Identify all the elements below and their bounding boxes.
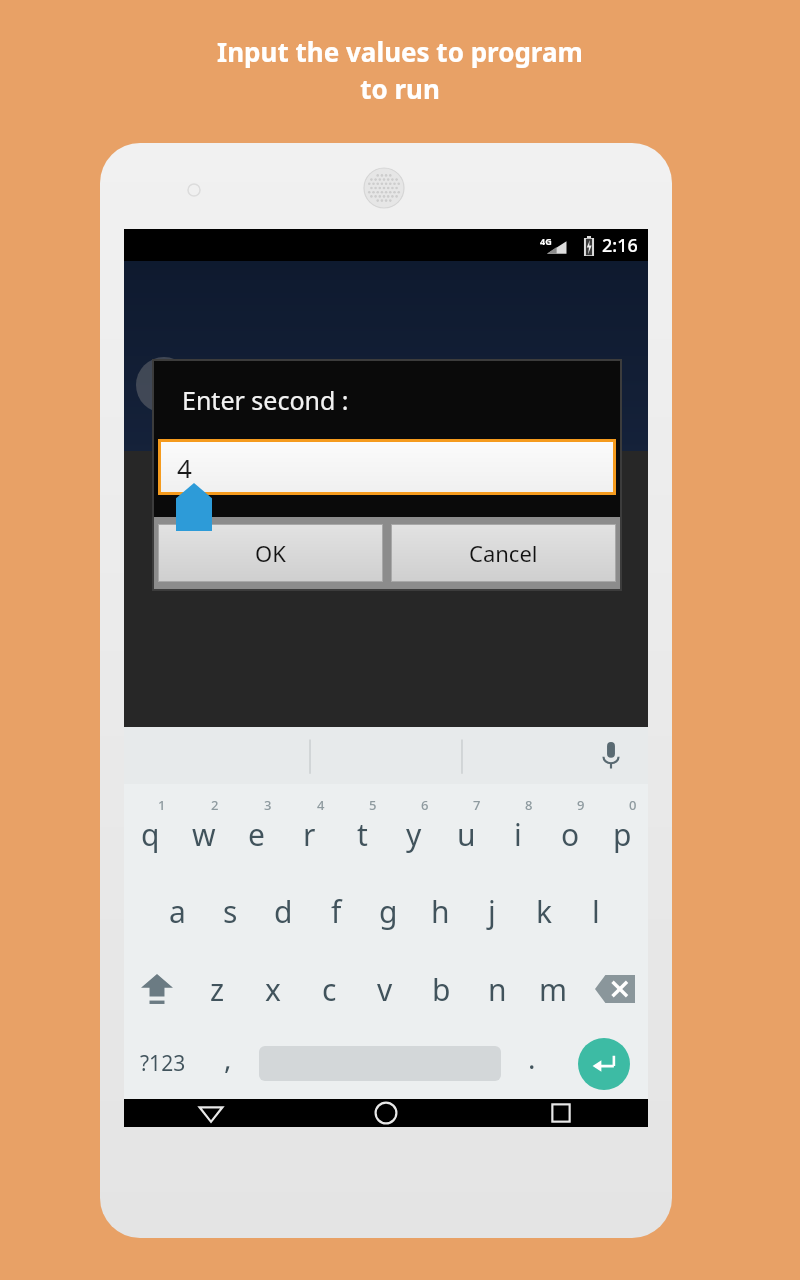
staticText: 6 (421, 796, 429, 814)
staticText: , (224, 1039, 232, 1077)
button[interactable]: n (469, 950, 525, 1028)
button[interactable]: Cancel (392, 525, 615, 581)
staticText: r (303, 814, 316, 855)
staticText: i (514, 814, 522, 855)
button[interactable]: Back (136, 357, 192, 413)
button[interactable]: Shift (124, 950, 190, 1028)
button[interactable]: a (151, 872, 204, 950)
staticText: 8 (525, 796, 533, 814)
button[interactable]: , (201, 1028, 255, 1099)
staticText: 3 (264, 796, 272, 814)
staticText: 5 (369, 796, 377, 814)
button[interactable]: Recents (473, 1099, 648, 1127)
staticText: k (536, 891, 553, 932)
staticText: m (539, 969, 568, 1010)
staticText: a (169, 891, 186, 932)
staticText: j (488, 891, 496, 932)
button[interactable]: Back (124, 1099, 298, 1127)
staticText: v (377, 969, 393, 1010)
staticText: c (322, 969, 337, 1010)
button[interactable]: m (525, 950, 581, 1028)
button[interactable]: c (301, 950, 357, 1028)
staticText: 1 (158, 796, 166, 814)
staticText: e (248, 814, 265, 855)
staticText: to run (360, 71, 440, 106)
button[interactable]: f (310, 872, 362, 950)
staticText: Out put (274, 363, 397, 409)
staticText: b (432, 969, 451, 1010)
button[interactable]: s (204, 872, 257, 950)
button[interactable]: 2 (177, 784, 230, 872)
button[interactable]: l (570, 872, 622, 950)
staticText: z (210, 969, 225, 1010)
button[interactable]: ?123 (124, 1028, 201, 1099)
staticText: ?123 (140, 1049, 186, 1078)
button[interactable]: 6 (388, 784, 440, 872)
button[interactable]: Backspace (581, 950, 648, 1028)
staticText: y (406, 814, 422, 855)
staticText: Input the values to program (217, 34, 583, 69)
staticText: w (192, 814, 216, 855)
staticText: n (488, 969, 507, 1010)
button[interactable]: 0 (596, 784, 648, 872)
staticText: Cancel (469, 538, 538, 568)
staticText: 9 (577, 796, 585, 814)
button[interactable]: 9 (544, 784, 596, 872)
staticText: . (528, 1039, 536, 1077)
staticText: p (613, 814, 632, 855)
button[interactable]: 3 (230, 784, 283, 872)
button[interactable]: Enter (578, 1038, 630, 1090)
staticText: 2:16 (602, 233, 638, 258)
staticText: h (431, 891, 450, 932)
button[interactable]: 4 (161, 442, 613, 492)
staticText: 4 (177, 450, 192, 485)
button[interactable]: 5 (336, 784, 388, 872)
button[interactable]: h (414, 872, 466, 950)
staticText: g (379, 891, 398, 932)
button[interactable]: Home (298, 1099, 473, 1127)
button[interactable]: x (245, 950, 301, 1028)
button[interactable]: 1 (124, 784, 177, 872)
staticText: 2 (211, 796, 219, 814)
staticText: d (274, 891, 293, 932)
button[interactable]: OK (159, 525, 382, 581)
staticText: s (223, 891, 238, 932)
staticText: q (141, 814, 160, 855)
button[interactable]: 8 (492, 784, 544, 872)
button[interactable]: . (505, 1028, 559, 1099)
button[interactable]: Voice input (592, 737, 630, 775)
staticText: 4 (317, 796, 325, 814)
button[interactable]: d (257, 872, 310, 950)
staticText: 7 (473, 796, 481, 814)
other: Text cursor handle (176, 483, 212, 531)
button[interactable]: v (357, 950, 413, 1028)
staticText: 0 (629, 796, 637, 814)
staticText: u (457, 814, 476, 855)
button[interactable]: z (190, 950, 245, 1028)
staticText: f (331, 891, 342, 932)
button[interactable]: 4 (283, 784, 336, 872)
staticText: x (265, 969, 281, 1010)
staticText: l (592, 891, 600, 932)
button[interactable]: j (466, 872, 518, 950)
staticText: o (561, 814, 580, 855)
button[interactable]: k (518, 872, 570, 950)
staticText: OK (255, 538, 286, 568)
button[interactable]: 7 (440, 784, 492, 872)
button[interactable]: b (413, 950, 469, 1028)
button[interactable]: g (362, 872, 414, 950)
staticText: 4G (540, 235, 552, 247)
staticText: t (357, 814, 368, 855)
staticText: Enter second : (182, 383, 349, 417)
